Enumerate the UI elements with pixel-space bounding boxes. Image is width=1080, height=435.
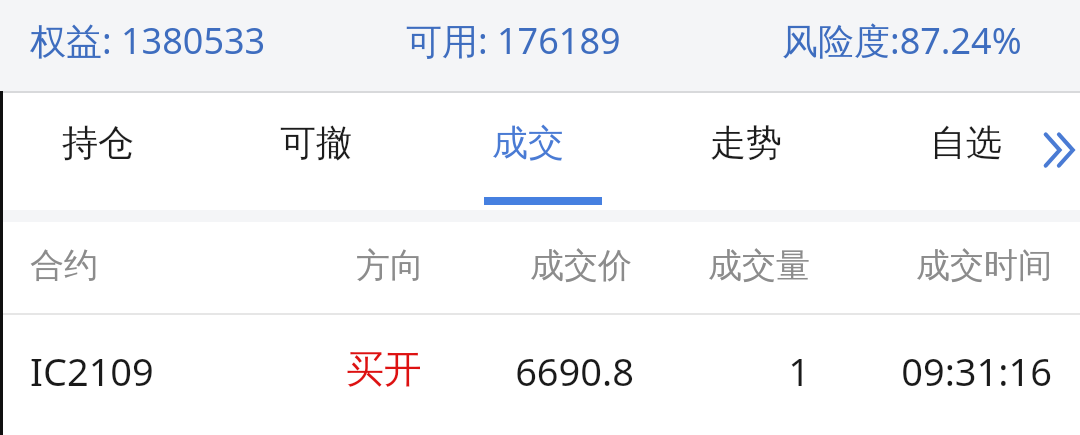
button[interactable]: More tabs	[1036, 123, 1080, 175]
button[interactable]: 成交	[470, 93, 610, 203]
staticText: 持仓	[62, 120, 134, 165]
staticText: 成交量	[0, 244, 810, 287]
button[interactable]: 自选	[908, 93, 1048, 203]
staticText: 可撤	[280, 120, 352, 165]
staticText: 成交价	[0, 244, 632, 287]
staticText: 成交	[492, 120, 564, 165]
staticText: 权益: 1380533	[30, 16, 266, 65]
staticText: 成交时间	[0, 244, 1052, 287]
button[interactable]: IC2109	[0, 315, 1080, 415]
staticText: 09:31:16	[0, 345, 1052, 397]
button[interactable]: 走势	[688, 93, 828, 203]
staticText: 买开	[0, 345, 422, 393]
staticText: 1	[0, 345, 810, 397]
staticText: 自选	[930, 120, 1002, 165]
staticText: 走势	[710, 120, 782, 165]
staticText: 风险度:87.24%	[782, 16, 1022, 65]
staticText: 方向	[0, 244, 424, 287]
button[interactable]: 权益: 1380533	[0, 0, 1080, 91]
staticText: IC2109	[30, 345, 154, 397]
staticText: 合约	[30, 244, 98, 287]
staticText: 6690.8	[0, 345, 634, 397]
button[interactable]: 持仓	[40, 93, 180, 203]
button[interactable]: 可撤	[258, 93, 398, 203]
staticText: 可用: 176189	[406, 16, 621, 65]
